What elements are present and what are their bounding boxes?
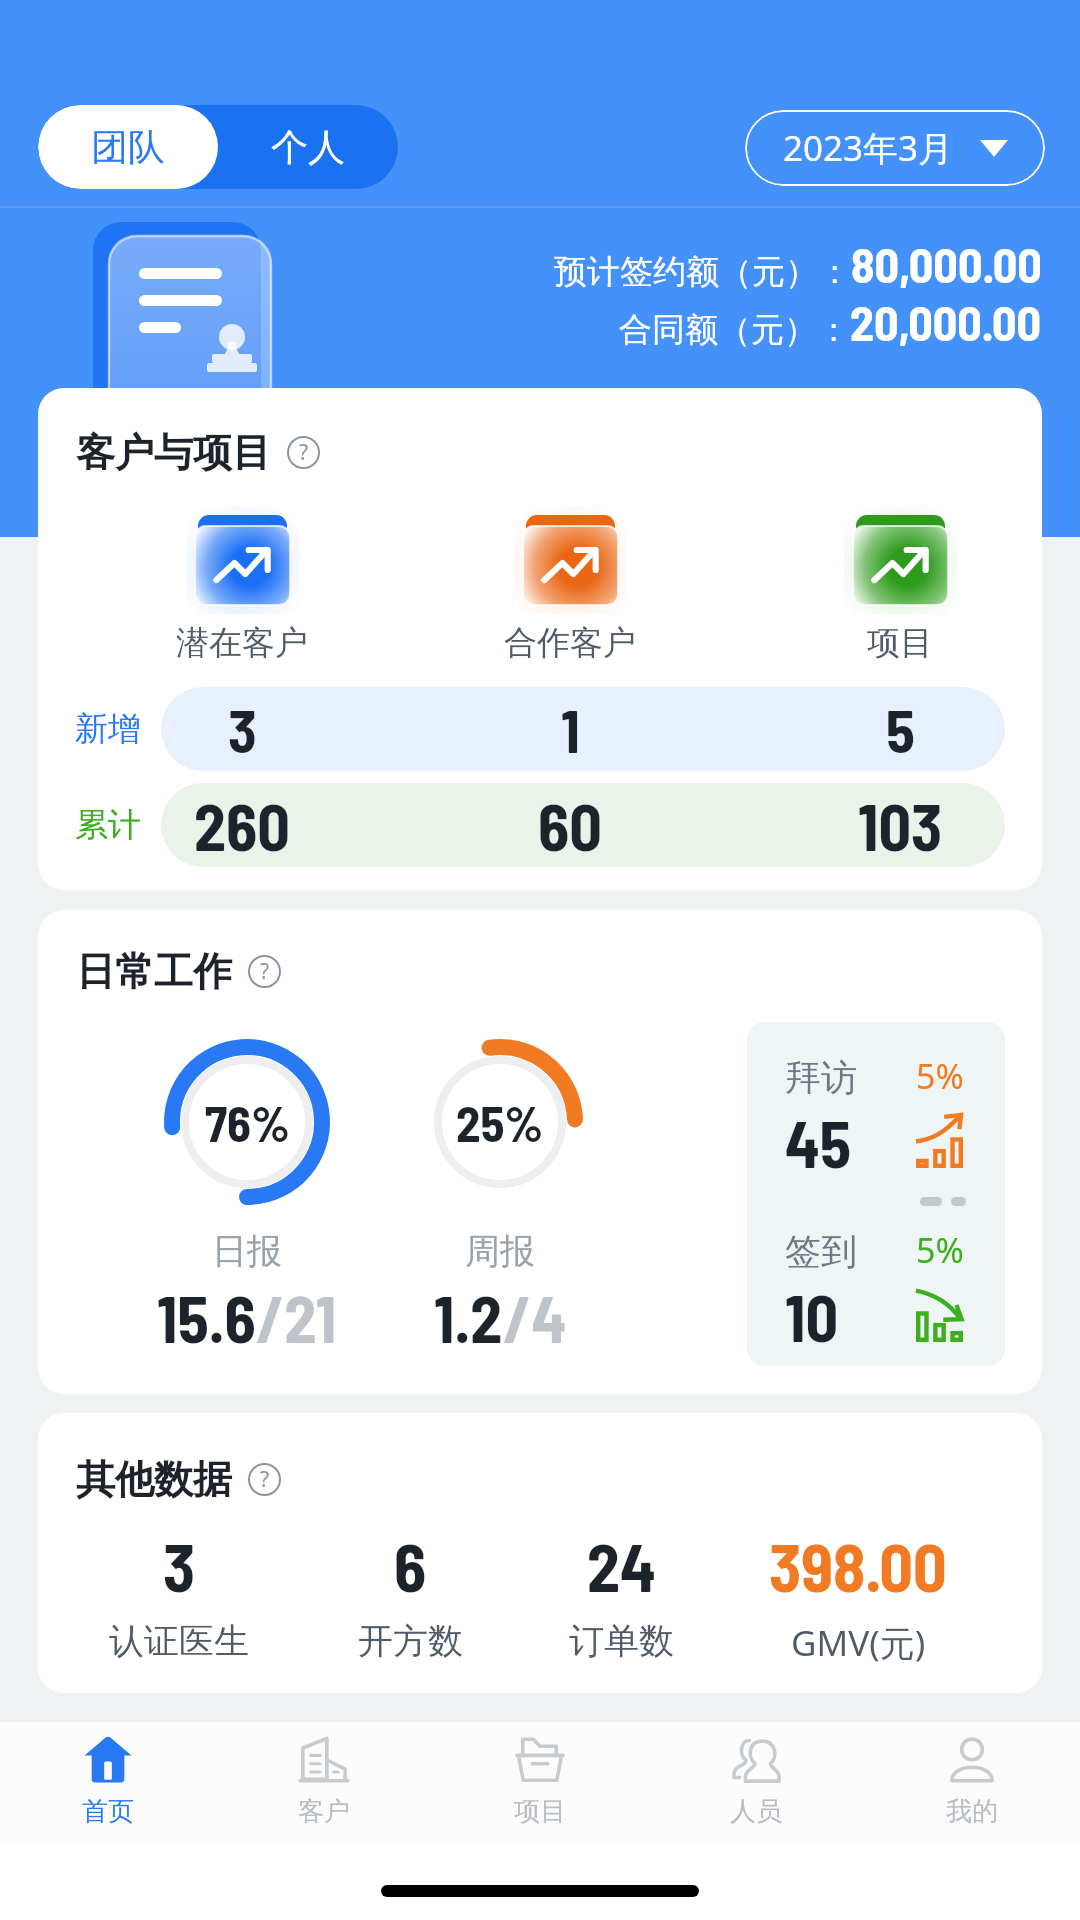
staticText: 103 [858,787,943,864]
staticText: 20,000.00 [850,293,1042,351]
staticText: 合同额（元）： [619,309,850,351]
staticText: 398.00 [769,1526,947,1605]
staticText: 新增 [75,708,141,750]
staticText: 24 [587,1526,656,1605]
staticText: ? [299,438,309,467]
staticText: GMV(元) [791,1619,926,1667]
button[interactable]: Help [248,955,281,988]
staticText: 个人 [271,124,345,171]
staticText: 合作客户 [504,622,636,664]
staticText: 1.2 [434,1279,503,1356]
staticText: 25% [456,1093,544,1152]
button[interactable]: 398.00 [738,1526,978,1667]
staticText: 客户 [298,1795,350,1828]
staticText: 认证医生 [109,1619,249,1663]
staticText: 76% [205,1093,290,1152]
button[interactable]: 24 [501,1526,741,1663]
staticText: 日常工作 [76,947,232,996]
staticText: 我的 [946,1795,998,1828]
button[interactable]: 合作客户 [490,506,650,664]
staticText: 5% [916,1053,964,1099]
staticText: 260 [194,787,290,864]
staticText: 订单数 [569,1619,674,1663]
staticText: 45 [785,1104,852,1181]
button[interactable]: 项目 [432,1737,648,1828]
staticText: 项目 [867,622,933,664]
button[interactable]: 客户 [216,1737,432,1828]
button[interactable]: 个人 [218,105,398,189]
staticText: 首页 [82,1795,134,1828]
button[interactable]: 我的 [864,1737,1080,1828]
staticText: 2023年3月 [783,124,954,172]
staticText: 5 [886,694,915,765]
button[interactable]: 3 [59,1526,299,1663]
staticText: 60 [538,787,602,864]
staticText: 15.6 [157,1279,256,1356]
staticText: 6 [394,1526,427,1605]
staticText: /4 [503,1279,567,1356]
staticText: 人员 [730,1795,782,1828]
staticText: /21 [256,1279,337,1356]
staticText: 签到 [785,1229,857,1274]
staticText: 80,000.00 [851,235,1042,293]
button[interactable]: 项目 [820,506,980,664]
staticText: 开方数 [358,1619,463,1663]
button[interactable]: 6 [290,1526,530,1663]
button[interactable]: 首页 [0,1737,216,1828]
button[interactable]: 人员 [648,1737,864,1828]
staticText: 拜访 [785,1055,857,1100]
staticText: ? [260,1465,270,1494]
staticText: ? [260,957,270,986]
button[interactable]: 潜在客户 [162,506,322,664]
staticText: 1 [561,694,580,765]
staticText: 累计 [75,804,141,846]
staticText: 10 [785,1278,839,1355]
button[interactable]: Help [287,436,320,469]
staticText: 3 [163,1526,196,1605]
button[interactable]: 2023年3月 [745,110,1045,186]
staticText: 日报 [212,1229,282,1273]
staticText: 其他数据 [76,1455,232,1504]
staticText: 周报 [465,1229,535,1273]
staticText: 团队 [91,124,165,171]
staticText: 客户与项目 [76,428,271,477]
staticText: 潜在客户 [176,622,308,664]
button[interactable]: Help [248,1463,281,1496]
staticText: 预计签约额（元）： [554,251,851,293]
staticText: 3 [228,694,257,765]
staticText: 项目 [514,1795,566,1828]
staticText: 5% [916,1227,964,1273]
button[interactable]: 团队 [38,105,218,189]
